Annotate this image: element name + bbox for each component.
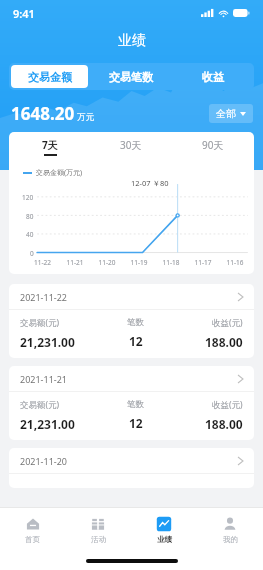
other: Details bbox=[238, 293, 243, 301]
staticText: 0 bbox=[30, 249, 34, 257]
other: Details bbox=[238, 457, 243, 465]
staticText: 交易额(元) bbox=[20, 399, 60, 411]
staticText: 30天 bbox=[120, 138, 142, 152]
staticText: 交易额(元) bbox=[20, 317, 60, 329]
staticText: 188.00 bbox=[205, 334, 243, 350]
button[interactable]: 交易金额 bbox=[11, 65, 88, 88]
staticText: 12 bbox=[129, 415, 143, 431]
staticText: 2021-11-21 bbox=[20, 373, 67, 385]
staticText: 40 bbox=[26, 230, 34, 238]
button[interactable]: 业绩 bbox=[131, 508, 197, 552]
button[interactable]: 2021-11-20 bbox=[9, 448, 254, 488]
button[interactable]: 90天 bbox=[172, 132, 254, 161]
staticText: 收益(元) bbox=[212, 317, 243, 329]
staticText: 90天 bbox=[202, 138, 224, 152]
staticText: 笔数 bbox=[127, 399, 144, 410]
staticText: 2021-11-20 bbox=[20, 455, 67, 467]
staticText: 交易笔数 bbox=[109, 70, 153, 84]
staticText: 万元 bbox=[77, 112, 94, 123]
staticText: 21,231.00 bbox=[20, 334, 75, 350]
button[interactable]: 2021-11-22 bbox=[9, 284, 254, 358]
staticText: 11-18 bbox=[155, 258, 187, 267]
staticText: 我的 bbox=[223, 535, 238, 544]
staticText: 首页 bbox=[25, 535, 40, 544]
staticText: 80 bbox=[26, 212, 34, 220]
staticText: 业绩 bbox=[157, 535, 172, 544]
staticText: 11-17 bbox=[187, 258, 219, 267]
staticText: 交易金额(万元) bbox=[36, 168, 83, 178]
staticText: 11-22 bbox=[26, 258, 59, 267]
button[interactable]: 2021-11-21 bbox=[9, 366, 254, 440]
staticText: 收益(元) bbox=[212, 399, 243, 411]
staticText: 2021-11-22 bbox=[20, 291, 67, 303]
button[interactable]: 活动 bbox=[65, 508, 131, 552]
button[interactable]: 30天 bbox=[90, 132, 172, 161]
button[interactable]: 7天 bbox=[9, 132, 90, 161]
staticText: 笔数 bbox=[127, 317, 144, 328]
button[interactable]: 交易笔数 bbox=[92, 65, 170, 88]
button[interactable]: 首页 bbox=[0, 508, 65, 552]
staticText: 12-07 ￥80 bbox=[131, 178, 254, 188]
staticText: 交易金额 bbox=[28, 70, 72, 84]
staticText: 11-21 bbox=[59, 258, 91, 267]
staticText: 9:41 bbox=[13, 6, 35, 21]
staticText: 7天 bbox=[42, 138, 58, 152]
staticText: 11-20 bbox=[91, 258, 123, 267]
staticText: 全部 bbox=[216, 107, 236, 120]
staticText: 188.00 bbox=[205, 416, 243, 432]
button[interactable]: 全部 bbox=[209, 104, 253, 123]
staticText: 业绩 bbox=[118, 32, 146, 50]
button[interactable]: 我的 bbox=[197, 508, 263, 552]
staticText: 11-16 bbox=[219, 258, 251, 267]
staticText: 12 bbox=[129, 333, 143, 349]
staticText: 11-19 bbox=[123, 258, 155, 267]
staticText: 收益 bbox=[202, 70, 224, 84]
button[interactable]: 收益 bbox=[174, 65, 252, 88]
staticText: 1648.20 bbox=[11, 102, 75, 125]
other: Details bbox=[238, 375, 243, 383]
staticText: 活动 bbox=[91, 535, 106, 544]
staticText: 21,231.00 bbox=[20, 416, 75, 432]
staticText: 120 bbox=[22, 193, 34, 201]
